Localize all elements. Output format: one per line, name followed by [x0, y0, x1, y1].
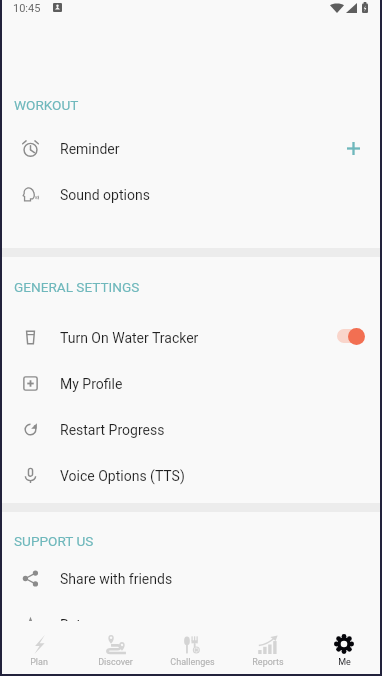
button[interactable]: Discover	[77, 621, 154, 676]
button[interactable]: Reports	[230, 621, 306, 676]
staticText: Reminder	[60, 141, 120, 157]
button[interactable]: Restart Progress	[0, 406, 382, 452]
button[interactable]: Reminder	[0, 125, 382, 171]
button[interactable]: My Profile	[0, 360, 382, 406]
button[interactable]: Plan	[0, 621, 77, 676]
staticText: Turn On Water Tracker	[60, 330, 199, 346]
staticText: Voice Options (TTS)	[60, 468, 185, 484]
staticText: GENERAL SETTINGS	[14, 279, 140, 295]
button[interactable]: Rate us	[0, 601, 382, 621]
button[interactable]: Add reminder	[340, 135, 366, 161]
button[interactable]: Share with friends	[0, 555, 382, 601]
button[interactable]: Me	[306, 621, 382, 676]
staticText: WORKOUT	[14, 97, 79, 113]
staticText: Me	[338, 657, 351, 668]
button[interactable]: Voice Options (TTS)	[0, 452, 382, 498]
button[interactable]: Turn On Water Tracker	[0, 314, 382, 360]
staticText: My Profile	[60, 376, 123, 392]
staticText: Challenges	[170, 657, 215, 668]
staticText: Restart Progress	[60, 422, 165, 438]
button[interactable]: Turn on water tracker	[334, 325, 366, 349]
staticText: 10:45	[13, 2, 41, 15]
staticText: Discover	[98, 657, 133, 668]
staticText: Rate us	[60, 617, 107, 621]
staticText: Share with friends	[60, 571, 173, 587]
staticText: Reports	[252, 657, 284, 668]
staticText: Sound options	[60, 187, 150, 203]
staticText: Plan	[30, 657, 48, 668]
button[interactable]: Sound options	[0, 171, 382, 217]
button[interactable]: Challenges	[154, 621, 230, 676]
staticText: SUPPORT US	[14, 533, 94, 549]
